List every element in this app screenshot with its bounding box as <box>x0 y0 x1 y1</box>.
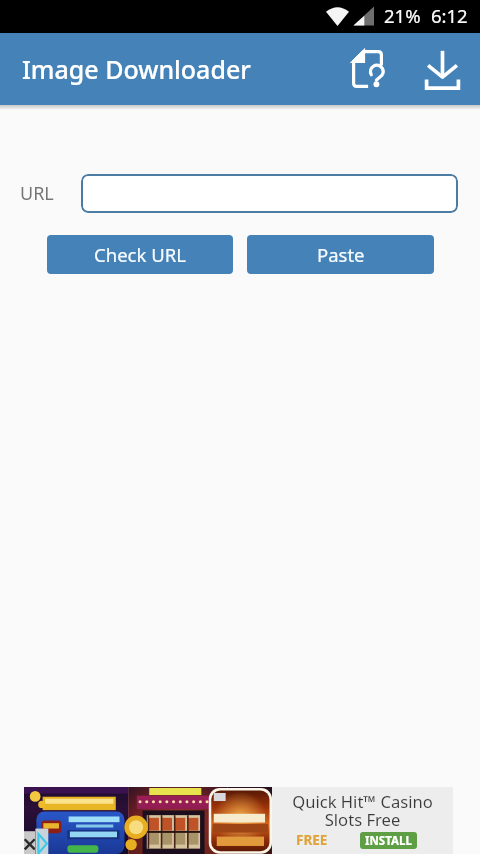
staticText: Quick Hit™ Casino Slots Free <box>292 790 433 831</box>
staticText: FREE <box>296 831 328 849</box>
button[interactable]: Check URL <box>47 235 233 274</box>
button[interactable]: Download <box>416 33 468 105</box>
staticText: Image Downloader <box>22 52 251 86</box>
button[interactable] <box>24 787 453 854</box>
staticText: Check URL <box>94 242 186 267</box>
staticText: Paste <box>317 242 365 267</box>
staticText: INSTALL <box>365 833 412 849</box>
button[interactable]: INSTALL <box>360 832 417 849</box>
staticText: URL <box>20 181 54 206</box>
staticText: 6:12 <box>431 3 468 28</box>
button[interactable]: URL input field <box>81 174 458 213</box>
button[interactable]: Help <box>341 33 393 105</box>
staticText: 21% <box>384 3 421 28</box>
button[interactable]: Paste <box>247 235 434 274</box>
